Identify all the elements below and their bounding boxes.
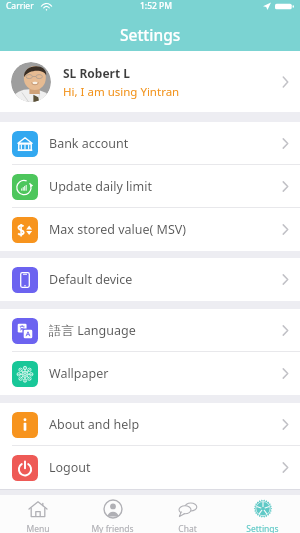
staticText: Max stored value( MSV) — [49, 221, 186, 238]
button[interactable]: My friends — [75, 495, 150, 533]
staticText: Update daily limit — [49, 178, 152, 195]
staticText: SL Robert L — [63, 65, 130, 81]
staticText: Settings — [120, 24, 181, 45]
button[interactable]: Bank account — [0, 122, 300, 165]
staticText: Logout — [49, 459, 91, 476]
staticText: Menu — [26, 523, 50, 533]
button[interactable]: About and help — [0, 403, 300, 446]
staticText: Default device — [49, 271, 133, 288]
button[interactable]: Max stored value( MSV) — [0, 208, 300, 251]
staticText: Settings — [246, 523, 279, 533]
button[interactable]: SL Robert L — [0, 51, 300, 112]
staticText: Chat — [178, 523, 197, 533]
button[interactable]: Default device — [0, 258, 300, 301]
staticText: Wallpaper — [49, 365, 109, 382]
staticText: Hi, I am using Yintran — [63, 84, 180, 100]
staticText: My friends — [91, 523, 134, 533]
button[interactable]: Chat — [150, 495, 225, 533]
button[interactable]: 語言 Language — [0, 309, 300, 352]
staticText: Carrier — [6, 0, 34, 12]
staticText: About and help — [49, 416, 140, 433]
button[interactable]: Update daily limit — [0, 165, 300, 208]
staticText: 語言 Language — [49, 322, 136, 339]
button[interactable]: Logout — [0, 446, 300, 489]
staticText: 1:52 PM — [140, 0, 173, 12]
staticText: Bank account — [49, 135, 129, 152]
button[interactable]: Settings — [225, 495, 300, 533]
button[interactable]: Menu — [0, 495, 75, 533]
button[interactable]: Wallpaper — [0, 352, 300, 395]
